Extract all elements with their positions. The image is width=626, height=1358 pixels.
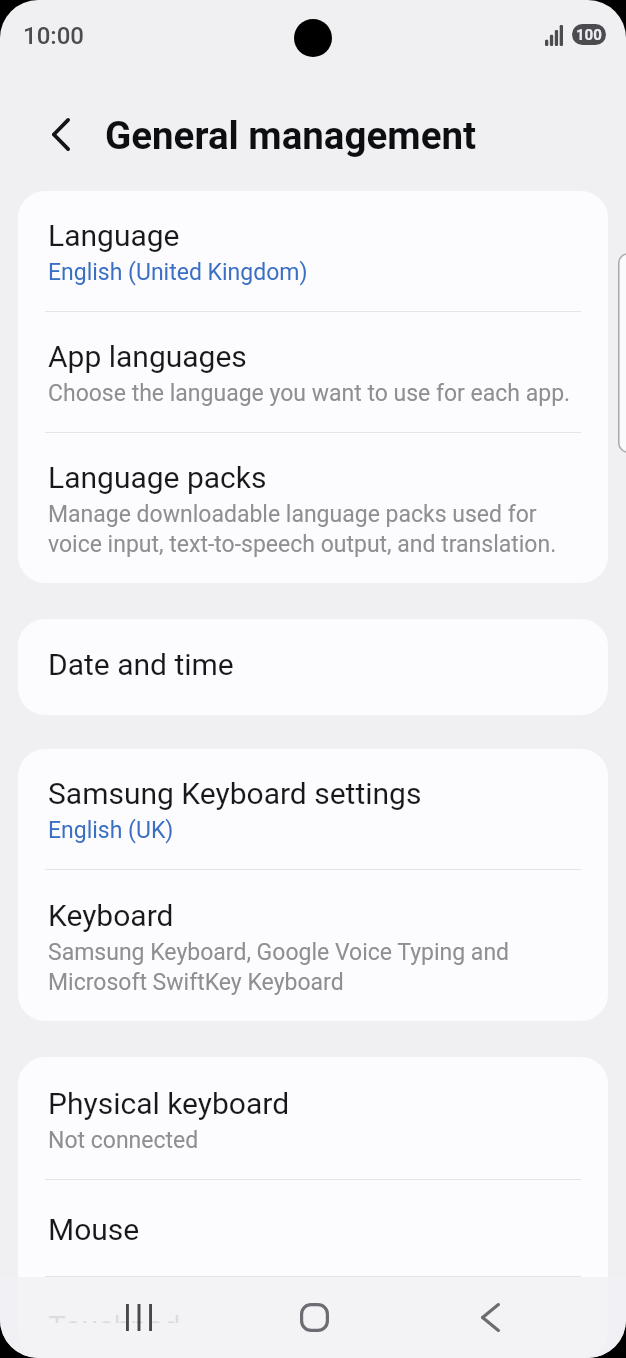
button[interactable]: Mouse: [18, 1180, 608, 1276]
staticText: Date and time: [48, 650, 234, 681]
staticText: App languages: [48, 342, 247, 373]
button[interactable]: Date and time: [18, 619, 608, 715]
staticText: Not connected: [48, 1124, 199, 1154]
button[interactable]: Keyboard: [18, 870, 608, 1021]
button[interactable]: Samsung Keyboard settings: [18, 749, 608, 869]
staticText: Touchpad: [48, 1312, 181, 1323]
staticText: Language: [48, 221, 180, 252]
staticText: Language packs: [48, 463, 267, 494]
staticText: Mouse: [48, 1215, 140, 1246]
button[interactable]: Language packs: [18, 433, 608, 583]
staticText: English (United Kingdom): [48, 256, 308, 286]
button[interactable]: Back: [447, 1277, 533, 1358]
button[interactable]: Language: [18, 191, 608, 311]
button[interactable]: Touchpad: [18, 1277, 608, 1358]
staticText: 10:00: [23, 22, 84, 50]
staticText: Choose the language you want to use for …: [48, 377, 571, 407]
staticText: Keyboard: [48, 901, 174, 932]
button[interactable]: Recent apps: [96, 1277, 182, 1358]
staticText: Samsung Keyboard settings: [48, 779, 422, 810]
staticText: English (UK): [48, 814, 174, 844]
staticText: General management: [105, 113, 477, 158]
button[interactable]: Physical keyboard: [18, 1057, 608, 1179]
staticText: 100: [576, 26, 602, 44]
staticText: Samsung Keyboard, Google Voice Typing an…: [48, 936, 580, 996]
button[interactable]: App languages: [18, 312, 608, 432]
button[interactable]: Home: [271, 1277, 357, 1358]
button[interactable]: Back: [30, 103, 92, 165]
staticText: Physical keyboard: [48, 1089, 290, 1120]
staticText: Manage downloadable language packs used …: [48, 498, 580, 558]
